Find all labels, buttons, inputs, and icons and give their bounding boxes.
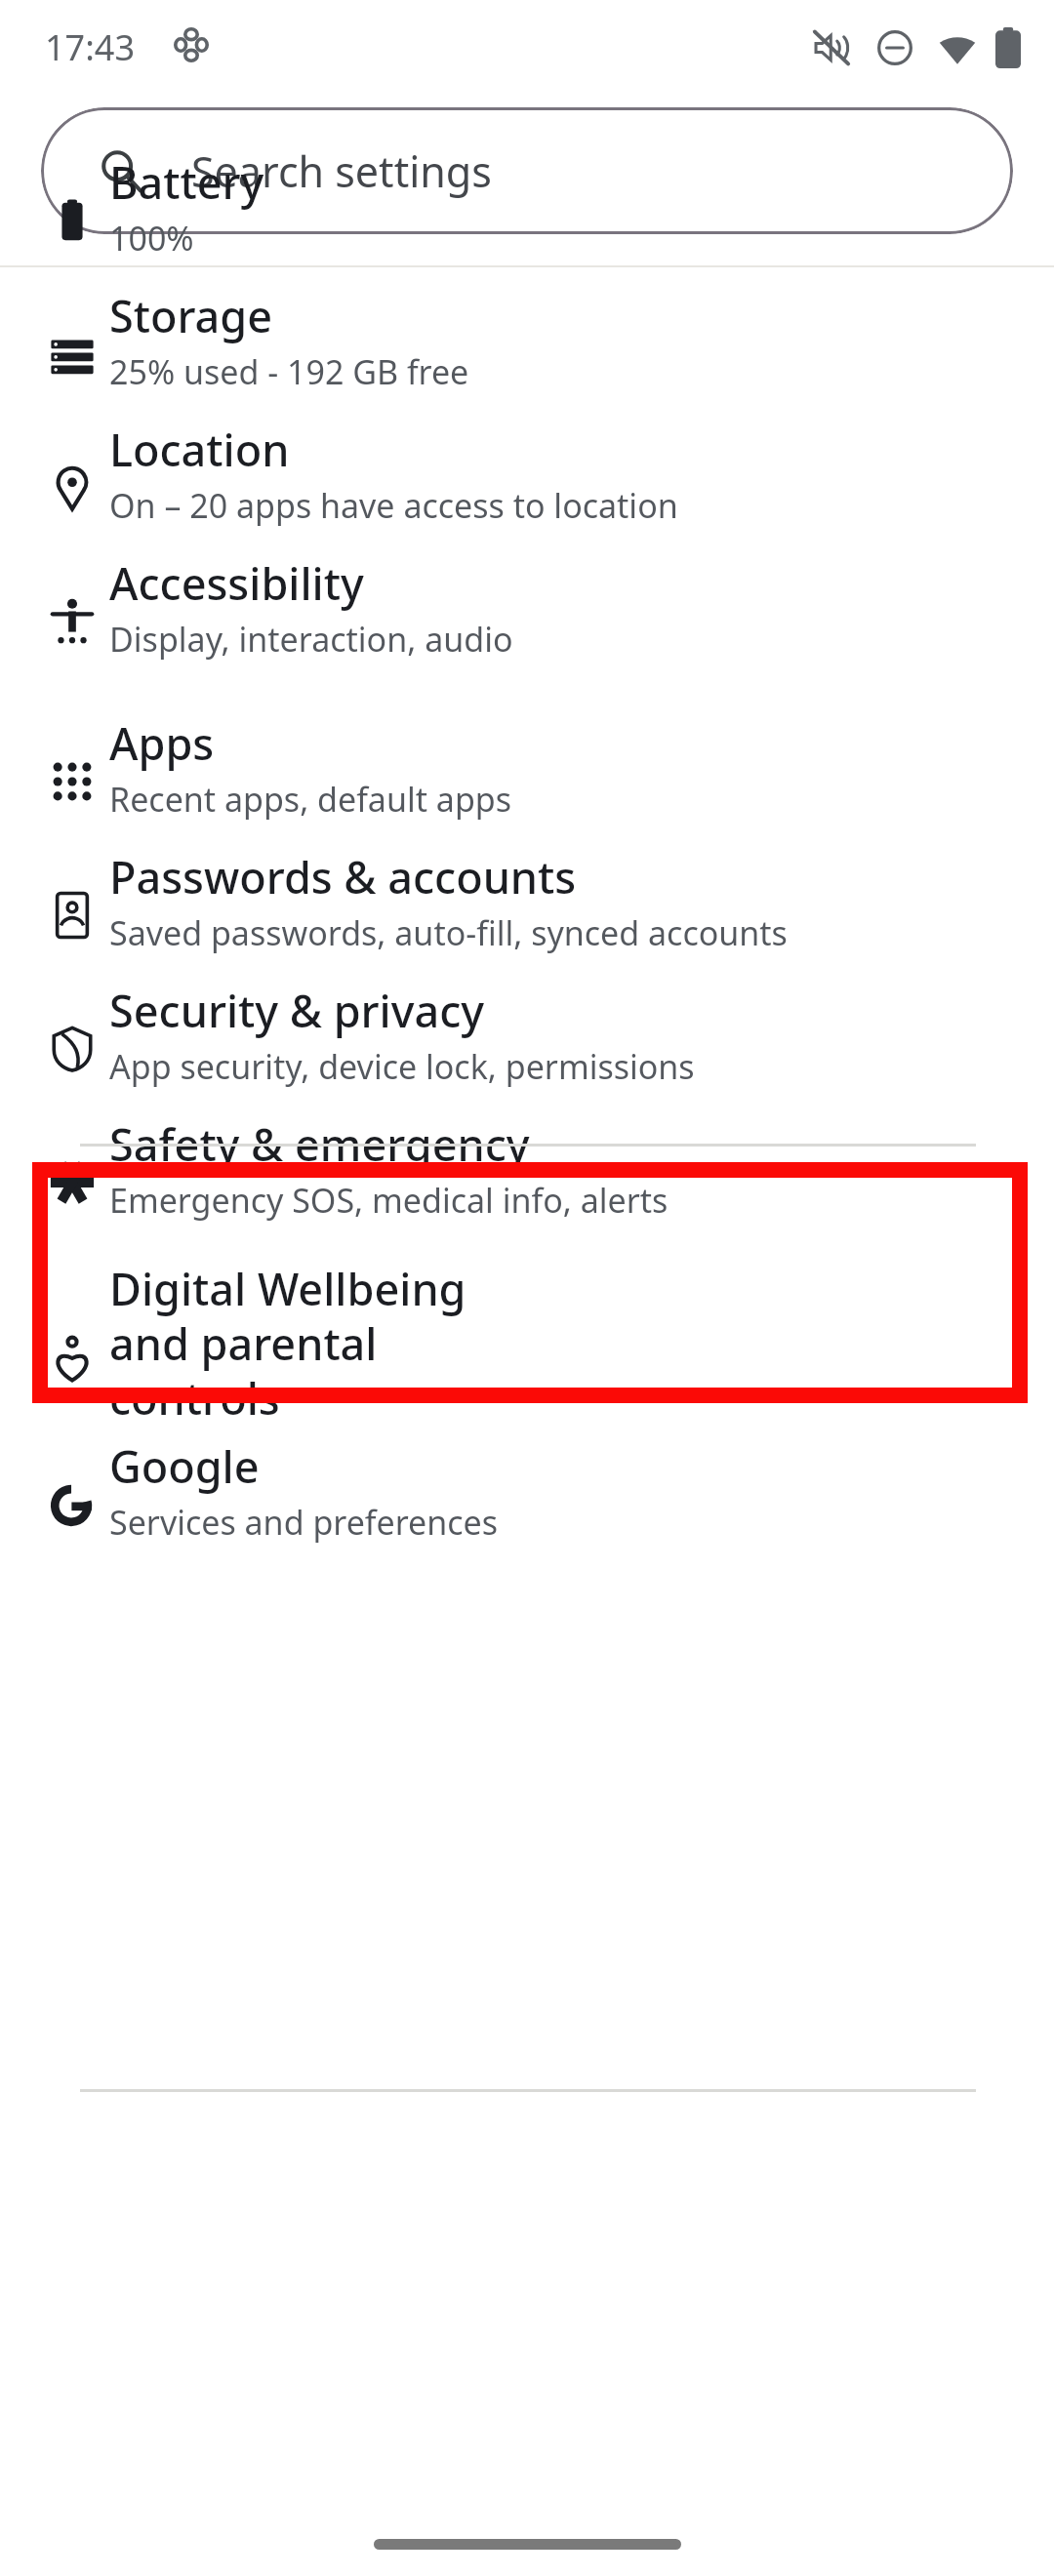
- staticText: Security & privacy: [109, 981, 485, 1040]
- button[interactable]: Passwords and accounts: [0, 839, 1054, 973]
- staticText: Battery: [109, 152, 264, 212]
- staticText: Safety & emergency: [109, 1114, 530, 1174]
- staticText: Passwords & accounts: [109, 847, 577, 906]
- staticText: Digital Wellbeing and parental controls: [109, 1259, 539, 1428]
- button[interactable]: Location: [0, 412, 1054, 545]
- staticText: Accessibility: [109, 553, 364, 613]
- other: Battery: [49, 197, 96, 244]
- button[interactable]: Google: [0, 1429, 1054, 1562]
- staticText: Display, interaction, audio: [109, 617, 513, 662]
- staticText: 100%: [109, 216, 194, 261]
- staticText: App security, device lock, permissions: [109, 1044, 695, 1089]
- staticText: Saved passwords, auto-fill, synced accou…: [109, 910, 788, 955]
- button[interactable]: Search settings: [41, 107, 1013, 234]
- other: Apps: [49, 758, 96, 805]
- button[interactable]: Accessibility: [0, 545, 1054, 679]
- staticText: Google: [109, 1436, 260, 1496]
- staticText: Emergency SOS, medical info, alerts: [109, 1178, 669, 1223]
- other: Google: [49, 1481, 96, 1528]
- button[interactable]: Apps: [0, 705, 1054, 839]
- staticText: 17:43: [45, 23, 136, 71]
- staticText: Recent apps, default apps: [109, 777, 512, 822]
- other: Accessibility: [49, 598, 96, 645]
- other: Storage: [49, 331, 96, 378]
- staticText: Search settings: [191, 142, 492, 200]
- staticText: On – 20 apps have access to location: [109, 483, 678, 528]
- staticText: Apps: [109, 713, 215, 773]
- button[interactable]: Storage: [0, 278, 1054, 412]
- other: Digital Wellbeing: [49, 1335, 96, 1382]
- other: Location: [49, 464, 96, 511]
- staticText: Location: [109, 420, 290, 479]
- button[interactable]: Digital Wellbeing: [0, 1251, 1054, 1429]
- staticText: 25% used - 192 GB free: [109, 349, 469, 394]
- staticText: Services and preferences: [109, 1500, 499, 1545]
- other: Passwords and accounts: [49, 892, 96, 939]
- other: Security and privacy: [49, 1026, 96, 1072]
- button[interactable]: Security and privacy: [0, 973, 1054, 1107]
- button[interactable]: Battery: [0, 144, 1054, 278]
- other: Safety and emergency: [49, 1159, 96, 1206]
- button[interactable]: Safety and emergency: [0, 1107, 1054, 1240]
- staticText: Storage: [109, 286, 273, 345]
